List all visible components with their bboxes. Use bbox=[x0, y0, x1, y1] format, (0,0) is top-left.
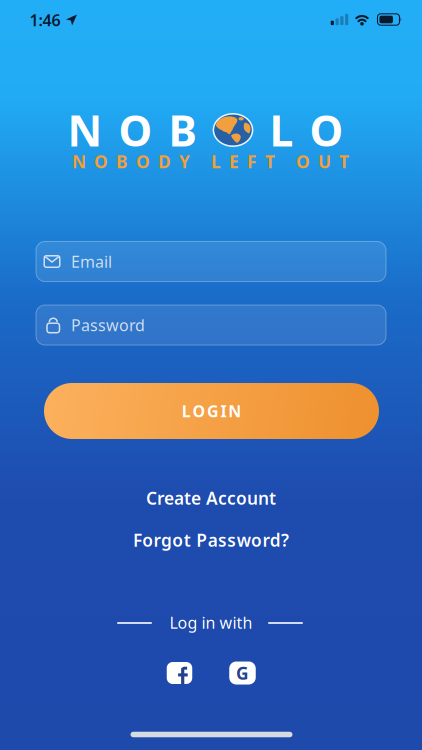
staticText: Email bbox=[71, 251, 112, 272]
staticText: Password bbox=[71, 314, 145, 336]
staticText: O bbox=[118, 102, 152, 158]
staticText: LOGIN bbox=[182, 400, 241, 422]
button[interactable]: Forgot Password? bbox=[133, 528, 289, 551]
staticText: G bbox=[236, 661, 249, 684]
staticText: 1:46 bbox=[29, 9, 60, 31]
staticText: L bbox=[269, 102, 293, 158]
staticText: Create Account bbox=[146, 486, 276, 509]
staticText: O bbox=[309, 102, 343, 158]
button[interactable]: Email bbox=[36, 241, 386, 281]
staticText: N bbox=[67, 102, 102, 158]
button[interactable]: Create Account bbox=[146, 486, 276, 509]
button[interactable]: LOGIN bbox=[44, 383, 379, 439]
staticText: NOBODY LEFT OUT bbox=[72, 150, 349, 173]
button[interactable]: Password bbox=[36, 305, 386, 345]
button[interactable]: Log in with Facebook bbox=[167, 662, 192, 684]
button[interactable]: Log in with Google bbox=[229, 661, 256, 684]
staticText: Log in with bbox=[169, 612, 252, 633]
staticText: Forgot Password? bbox=[133, 528, 289, 551]
staticText: B bbox=[168, 102, 196, 158]
